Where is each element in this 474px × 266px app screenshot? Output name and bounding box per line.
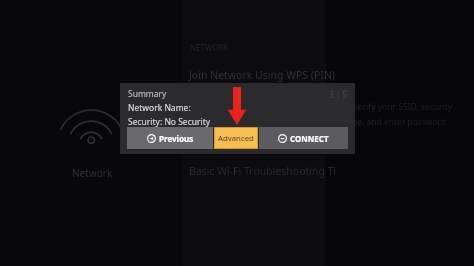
button[interactable]: Advanced: [215, 128, 257, 148]
staticText: 3 | 5: [329, 89, 347, 100]
button[interactable]: CONNECT: [259, 127, 348, 149]
staticText: Network Name:: [128, 102, 191, 114]
other: Network: [60, 100, 120, 148]
staticText: CONNECT: [290, 133, 329, 144]
staticText: pe, and enter password: [352, 116, 447, 128]
staticText: Previous: [159, 133, 194, 144]
staticText: Network: [72, 166, 113, 180]
staticText: NETWORK: [190, 42, 229, 53]
button[interactable]: Basic Wi-Fi Troubleshooting Ti: [189, 164, 337, 178]
button[interactable]: Previous: [127, 127, 213, 149]
staticText: Summary: [128, 88, 167, 100]
staticText: Advanced: [218, 133, 254, 144]
staticText: pecify your SSID, security: [352, 101, 453, 113]
button[interactable]: Join Network Using WPS (PIN): [189, 68, 336, 82]
staticText: Security: No Security: [128, 116, 211, 128]
